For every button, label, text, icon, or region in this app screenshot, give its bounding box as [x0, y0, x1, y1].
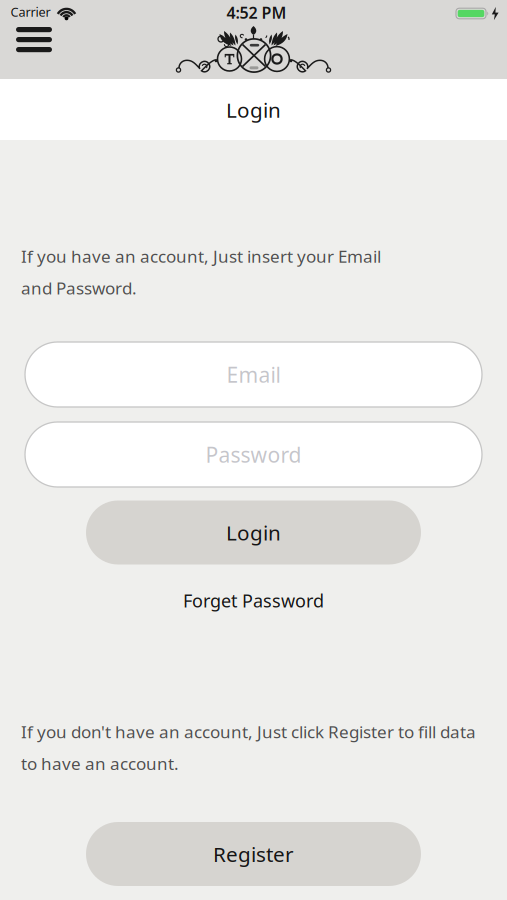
staticText: to have an account.: [21, 752, 179, 775]
button[interactable]: Menu: [12, 23, 56, 57]
staticText: and Password.: [21, 276, 137, 299]
staticText: Register: [213, 840, 294, 868]
staticText: If you don't have an account, Just click…: [21, 720, 476, 743]
staticText: If you have an account, Just insert your…: [21, 244, 381, 268]
staticText: Login: [226, 518, 281, 546]
button[interactable]: Register: [86, 822, 421, 886]
staticText: Login: [226, 96, 281, 124]
button[interactable]: Password: [25, 422, 482, 487]
staticText: Forget Password: [183, 588, 324, 613]
button[interactable]: Forget Password: [183, 588, 324, 613]
staticText: Password: [205, 440, 301, 469]
staticText: 4:52 PM: [226, 2, 286, 23]
button[interactable]: Login: [86, 500, 421, 564]
staticText: Carrier: [10, 3, 50, 21]
staticText: Email: [226, 360, 280, 389]
button[interactable]: Email: [25, 342, 482, 407]
